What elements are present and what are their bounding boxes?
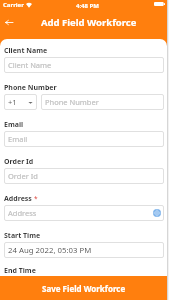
button[interactable]: Email	[4, 131, 164, 147]
staticText: 24 Aug 2022, 05:03 PM	[8, 245, 92, 256]
button[interactable]: +1	[4, 94, 37, 110]
staticText: Start Time	[4, 231, 41, 241]
staticText: Client Name	[8, 60, 52, 70]
other: Pick location	[153, 209, 161, 217]
button[interactable]: Order Id	[4, 168, 164, 184]
staticText: Phone Number	[45, 97, 99, 107]
staticText: Phone Number	[4, 83, 57, 93]
button[interactable]: Phone Number	[41, 94, 164, 110]
staticText: Order Id	[8, 171, 38, 181]
button[interactable]: Back	[0, 15, 18, 29]
staticText: Email	[8, 134, 28, 144]
staticText: Email	[4, 120, 24, 130]
button[interactable]: 24 Aug 2022, 05:03 PM	[4, 242, 164, 258]
staticText: Order Id	[4, 157, 34, 167]
staticText: Save Field Workforce	[42, 283, 126, 294]
button[interactable]: Address	[4, 205, 164, 221]
staticText: Carrier	[3, 1, 24, 9]
staticText: Add Field Workforce	[41, 16, 137, 29]
staticText: Client Name	[4, 46, 48, 56]
button[interactable]: Save Field Workforce	[0, 276, 167, 300]
staticText: End Time	[4, 266, 36, 276]
staticText: +1	[8, 97, 17, 107]
staticText: Address	[8, 208, 153, 218]
staticText: *	[34, 194, 38, 203]
staticText: Address	[4, 194, 34, 204]
staticText: 4:48 PM	[76, 2, 99, 10]
button[interactable]: Client Name	[4, 57, 164, 73]
